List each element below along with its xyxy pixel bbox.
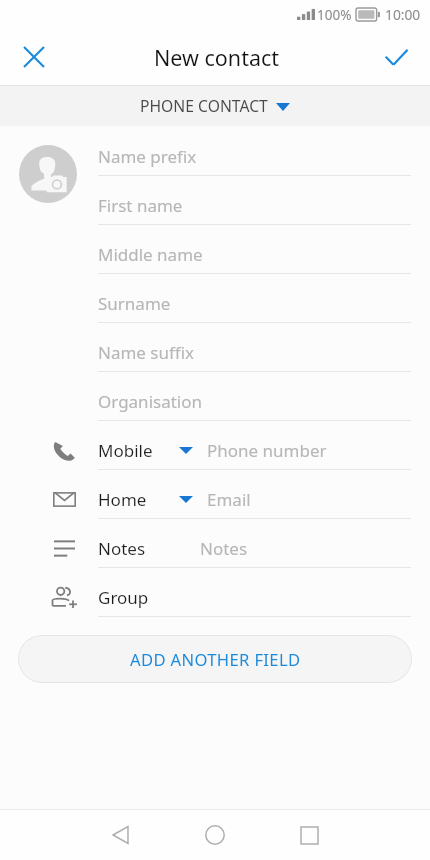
staticText: 10:00 xyxy=(385,5,421,24)
button[interactable]: Name suffix xyxy=(0,323,430,372)
staticText: Name suffix xyxy=(98,341,195,364)
button[interactable]: Middle name xyxy=(0,225,430,274)
staticText: Email xyxy=(207,488,251,511)
staticText: Name prefix xyxy=(98,145,197,168)
button[interactable]: Close xyxy=(11,34,57,80)
button[interactable]: Mobile xyxy=(0,421,430,470)
staticText: Middle name xyxy=(98,243,203,266)
button[interactable]: Name prefix xyxy=(0,127,430,176)
staticText: Mobile xyxy=(98,439,153,462)
staticText: PHONE CONTACT xyxy=(140,95,268,116)
button[interactable]: Surname xyxy=(0,274,430,323)
button[interactable]: Add photo xyxy=(19,145,77,203)
button[interactable]: Organisation xyxy=(0,372,430,421)
button[interactable]: Save xyxy=(373,34,419,80)
button[interactable]: Notes xyxy=(0,519,430,568)
staticText: First name xyxy=(98,194,183,217)
button[interactable]: Home xyxy=(185,810,245,860)
staticText: New contact xyxy=(154,43,280,72)
staticText: Surname xyxy=(98,292,171,315)
staticText: Home xyxy=(98,488,147,511)
button[interactable]: Back xyxy=(90,810,150,860)
button[interactable]: Home xyxy=(0,470,430,519)
staticText: Notes xyxy=(98,537,146,560)
staticText: Organisation xyxy=(98,390,203,413)
staticText: Notes xyxy=(200,537,248,560)
staticText: Group xyxy=(98,586,149,609)
button[interactable]: ADD ANOTHER FIELD xyxy=(18,635,412,683)
staticText: 100% xyxy=(317,6,352,24)
button[interactable]: Group xyxy=(0,568,430,617)
staticText: Phone number xyxy=(207,439,327,462)
button[interactable]: First name xyxy=(0,176,430,225)
button[interactable]: PHONE CONTACT xyxy=(0,85,430,126)
button[interactable]: Recents xyxy=(279,810,339,860)
staticText: ADD ANOTHER FIELD xyxy=(130,648,301,671)
